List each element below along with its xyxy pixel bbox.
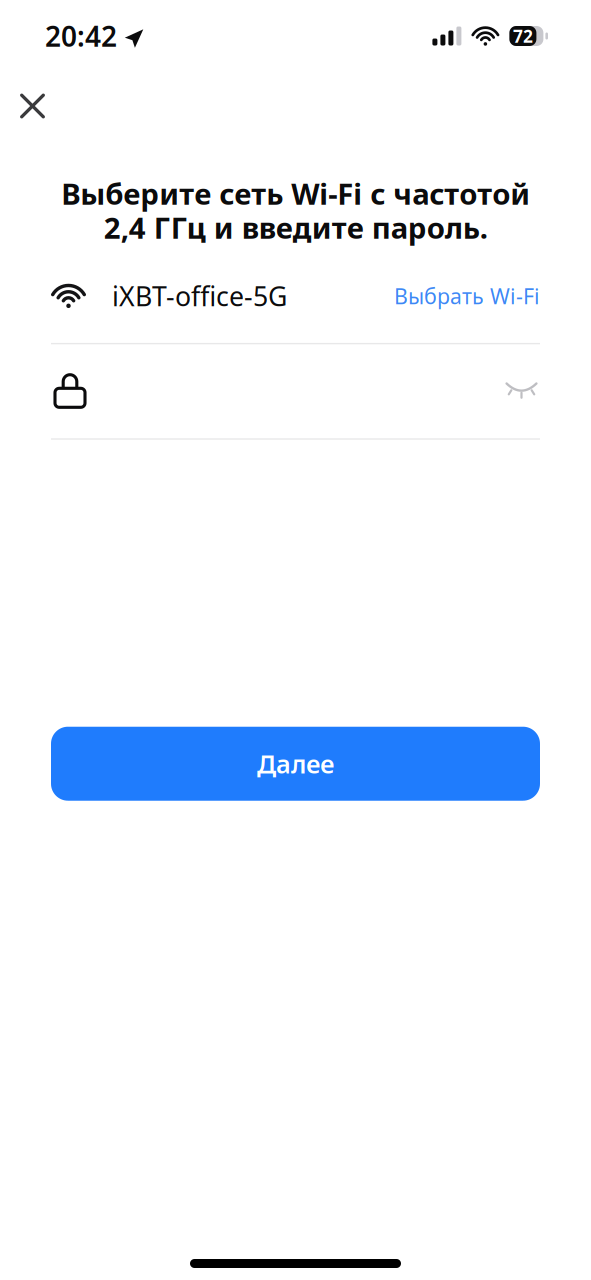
staticText: Далее [257, 747, 334, 780]
staticText: 20:42 [45, 17, 117, 55]
button[interactable]: Close [7, 80, 58, 131]
staticText: iXBT-office-5G [112, 278, 287, 314]
button[interactable]: Далее [51, 727, 540, 801]
staticText: 72 [513, 24, 533, 47]
staticText: Выбрать Wi-Fi [394, 282, 540, 310]
staticText: Выберите сеть Wi-Fi с частотой 2,4 ГГц и… [61, 174, 530, 247]
button[interactable]: Show password [491, 367, 540, 413]
button[interactable]: iXBT-office-5G [51, 274, 540, 318]
